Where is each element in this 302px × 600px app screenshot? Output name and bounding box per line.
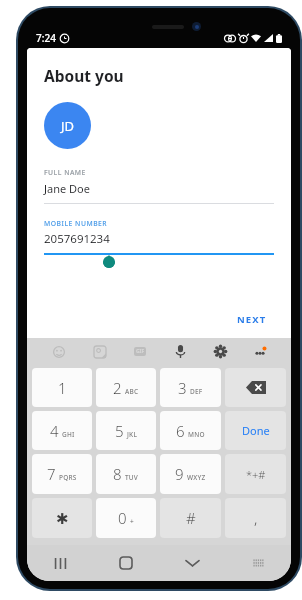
button[interactable]: Switch keyboard <box>225 545 291 581</box>
staticText: MOBILE NUMBER <box>44 219 108 228</box>
staticText: 9 <box>175 464 184 484</box>
button[interactable]: Profile avatar JD <box>44 102 91 149</box>
staticText: 2 <box>113 378 122 398</box>
button[interactable]: MOBILE NUMBER <box>44 219 274 255</box>
staticText: + <box>130 517 134 526</box>
button[interactable]: , <box>225 498 286 538</box>
button[interactable]: Voice input <box>160 338 200 365</box>
staticText: MNO <box>188 430 205 439</box>
staticText: 7 <box>47 464 56 484</box>
staticText: TUV <box>125 473 139 482</box>
button[interactable]: 5 <box>96 411 156 450</box>
button[interactable]: 9 <box>160 454 221 494</box>
button[interactable]: Hide keyboard <box>159 545 225 581</box>
staticText: 5 <box>115 421 124 441</box>
staticText: 0 <box>118 508 127 528</box>
button[interactable]: Backspace <box>225 368 286 407</box>
staticText: 4 <box>50 421 59 441</box>
staticText: WXYZ <box>187 473 206 482</box>
staticText: , <box>254 508 258 528</box>
staticText: NEXT <box>237 313 267 326</box>
button[interactable]: # <box>160 498 221 538</box>
staticText: 8 <box>113 464 122 484</box>
button[interactable]: 4 <box>32 411 92 450</box>
staticText: Jane Doe <box>44 181 90 196</box>
staticText: DEF <box>190 387 203 396</box>
button[interactable]: Stickers <box>79 338 120 365</box>
staticText: 7:24 <box>36 31 56 45</box>
staticText: About you <box>44 65 124 86</box>
button[interactable]: More options <box>240 338 280 365</box>
staticText: # <box>186 508 196 528</box>
button[interactable]: 6 <box>160 411 221 450</box>
staticText: ABC <box>125 387 139 396</box>
staticText: ✱ <box>56 510 69 527</box>
button[interactable]: 1 <box>32 368 92 407</box>
staticText: GIF <box>136 348 145 355</box>
button[interactable]: Done <box>225 411 286 450</box>
button[interactable]: 8 <box>96 454 156 494</box>
staticText: FULL NAME <box>44 168 86 177</box>
button[interactable]: 3 <box>160 368 221 407</box>
button[interactable]: 0 <box>96 498 156 538</box>
staticText: 3 <box>178 378 187 398</box>
button[interactable]: Emoji <box>38 338 79 365</box>
button[interactable]: NEXT <box>230 308 274 331</box>
staticText: JKL <box>127 430 138 439</box>
button[interactable]: 2 <box>96 368 156 407</box>
staticText: *+# <box>246 467 266 482</box>
button[interactable]: FULL NAME <box>44 168 274 204</box>
staticText: 6 <box>176 421 185 441</box>
staticText: 1 <box>58 378 67 398</box>
staticText: PQRS <box>59 473 77 482</box>
button[interactable]: ✱ <box>32 498 92 538</box>
staticText: JD <box>61 117 75 135</box>
staticText: GHI <box>62 430 75 439</box>
staticText: 2057691234 <box>44 231 110 247</box>
staticText: Done <box>242 423 270 438</box>
button[interactable]: GIF <box>120 338 160 365</box>
button[interactable]: Home <box>93 545 159 581</box>
button[interactable]: Keyboard settings <box>200 338 240 365</box>
button[interactable]: 7 <box>32 454 92 494</box>
button[interactable]: Recent apps <box>27 545 93 581</box>
button[interactable]: *+# <box>225 454 286 494</box>
